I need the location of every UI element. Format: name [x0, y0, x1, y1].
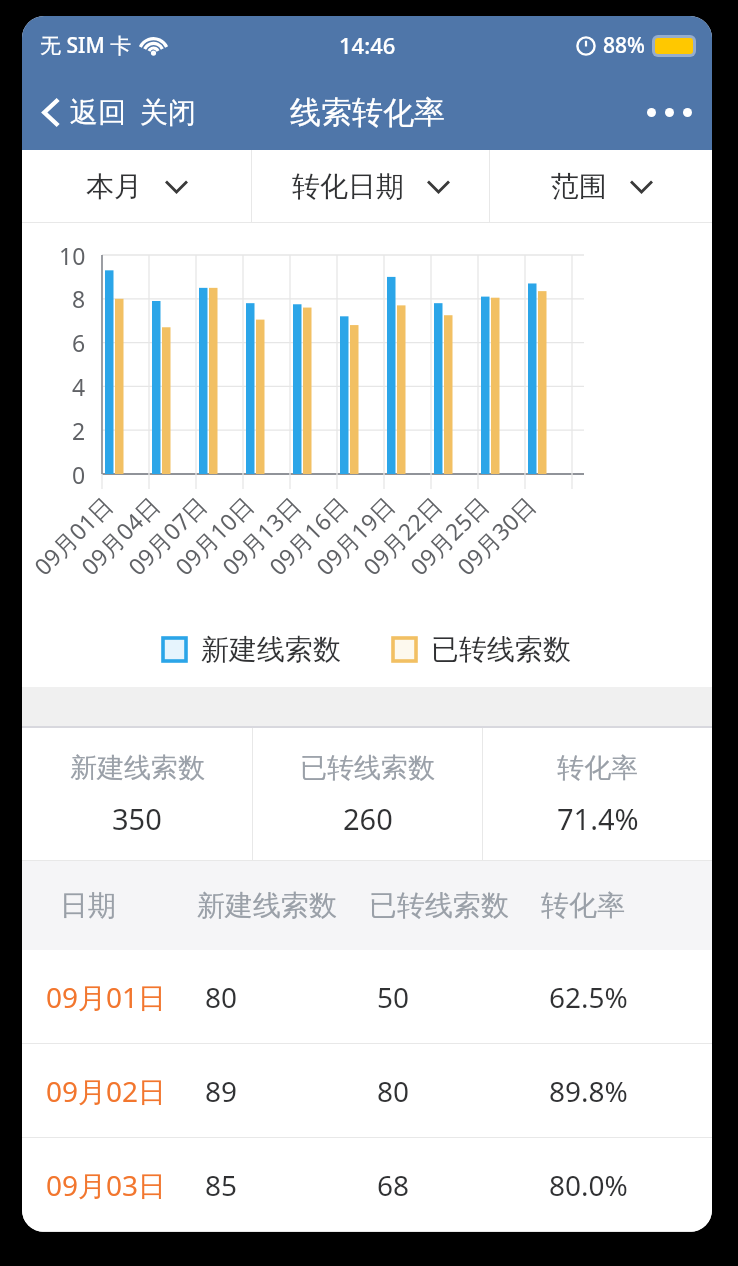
staticText: 无 SIM 卡 [40, 31, 132, 60]
button[interactable]: 返回 [34, 87, 134, 138]
staticText: 转化日期 [292, 169, 404, 204]
staticText: 88% [603, 31, 645, 60]
staticText: 09月01日 [46, 978, 197, 1016]
staticText: 已转线索数 [300, 751, 435, 785]
button[interactable]: More options [627, 92, 712, 133]
staticText: 转化率 [541, 888, 712, 923]
staticText: 80 [377, 1072, 541, 1110]
staticText: 关闭 [140, 95, 196, 130]
staticText: 范围 [551, 169, 607, 204]
button[interactable]: 已转线索数 [393, 632, 571, 667]
staticText: 新建线索数 [201, 632, 341, 667]
button[interactable]: 关闭 [134, 87, 202, 138]
button[interactable]: 已转线索数 [253, 728, 482, 860]
button[interactable]: 09月02日 [22, 1044, 712, 1137]
staticText: 89 [205, 1072, 369, 1110]
button[interactable]: 本月 [22, 150, 251, 222]
staticText: 09月02日 [46, 1072, 197, 1110]
staticText: 已转线索数 [369, 888, 541, 923]
staticText: 89.8% [549, 1072, 712, 1110]
staticText: 已转线索数 [431, 632, 571, 667]
staticText: 50 [377, 978, 541, 1016]
button[interactable]: 新建线索数 [163, 632, 341, 667]
button[interactable]: 09月01日 [22, 950, 712, 1043]
staticText: 68 [377, 1166, 541, 1204]
button[interactable]: 范围 [490, 150, 712, 222]
button[interactable]: 转化率 [483, 728, 712, 860]
staticText: 转化率 [557, 751, 638, 785]
staticText: 日期 [60, 888, 197, 923]
staticText: 80 [205, 978, 369, 1016]
staticText: 新建线索数 [197, 888, 369, 923]
staticText: 新建线索数 [70, 751, 205, 785]
button[interactable]: 新建线索数 [22, 728, 252, 860]
staticText: 350 [112, 799, 162, 838]
staticText: 71.4% [557, 799, 639, 838]
staticText: 线索转化率 [290, 93, 445, 132]
staticText: 80.0% [549, 1166, 712, 1204]
staticText: 14:46 [339, 30, 396, 60]
staticText: 返回 [70, 95, 126, 130]
staticText: 本月 [86, 169, 142, 204]
staticText: 85 [205, 1166, 369, 1204]
button[interactable]: 09月03日 [22, 1138, 712, 1231]
staticText: 62.5% [549, 978, 712, 1016]
button[interactable]: 转化日期 [252, 150, 489, 222]
staticText: 09月03日 [46, 1166, 197, 1204]
staticText: 260 [343, 799, 393, 838]
